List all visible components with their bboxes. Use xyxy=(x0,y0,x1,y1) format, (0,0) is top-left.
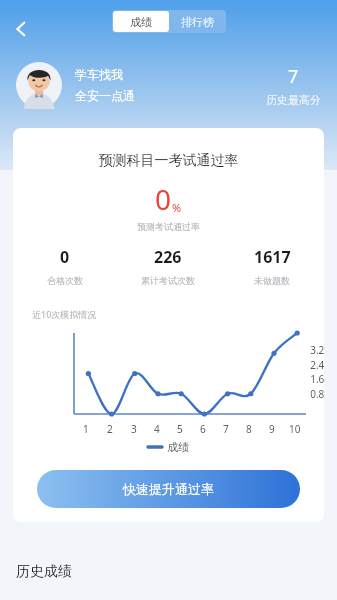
staticText: 2 xyxy=(107,422,113,436)
staticText: 6 xyxy=(200,422,206,436)
button[interactable]: 成绩 xyxy=(113,11,169,32)
staticText: 历史成绩 xyxy=(16,563,72,581)
staticText: 0 xyxy=(155,180,172,218)
staticText: 1 xyxy=(83,422,89,436)
staticText: 0.80 xyxy=(298,387,324,401)
button[interactable]: 0 xyxy=(13,246,116,286)
staticText: 排行榜 xyxy=(181,15,214,29)
staticText: 226 xyxy=(154,246,182,268)
button[interactable]: 排行榜 xyxy=(169,11,225,32)
staticText: 1.60 xyxy=(298,372,324,386)
staticText: % xyxy=(172,200,182,215)
staticText: 4 xyxy=(154,422,160,436)
staticText: 成绩 xyxy=(130,15,152,29)
button[interactable]: Back xyxy=(4,12,38,46)
button[interactable]: 快速提升通过率 xyxy=(37,470,300,508)
staticText: 9 xyxy=(269,422,275,436)
staticText: 10 xyxy=(289,422,301,436)
staticText: 3 xyxy=(131,422,137,436)
staticText: 0 xyxy=(60,246,70,268)
staticText: 合格次数 xyxy=(47,275,83,286)
staticText: 5 xyxy=(177,422,183,436)
staticText: 成绩 xyxy=(167,440,189,454)
button[interactable]: 1617 xyxy=(220,246,324,286)
staticText: 1617 xyxy=(254,246,291,268)
staticText: 全安一点通 xyxy=(75,88,135,103)
staticText: 快速提升通过率 xyxy=(123,481,214,497)
staticText: 2.40 xyxy=(298,358,324,372)
staticText: 预测考试通过率 xyxy=(13,221,324,232)
staticText: 预测科目一考试通过率 xyxy=(13,152,324,170)
staticText: 0 xyxy=(298,402,324,416)
staticText: 7 xyxy=(223,422,229,436)
button[interactable]: 226 xyxy=(116,246,220,286)
staticText: 3.20 xyxy=(298,343,324,357)
staticText: 累计考试次数 xyxy=(141,275,195,286)
staticText: 7 xyxy=(288,64,299,89)
staticText: 近10次模拟情况 xyxy=(32,308,97,320)
staticText: 未做题数 xyxy=(254,275,290,286)
staticText: 学车找我 xyxy=(75,67,123,82)
staticText: 4 xyxy=(298,328,324,342)
staticText: 历史最高分 xyxy=(266,93,321,107)
staticText: 8 xyxy=(246,422,252,436)
